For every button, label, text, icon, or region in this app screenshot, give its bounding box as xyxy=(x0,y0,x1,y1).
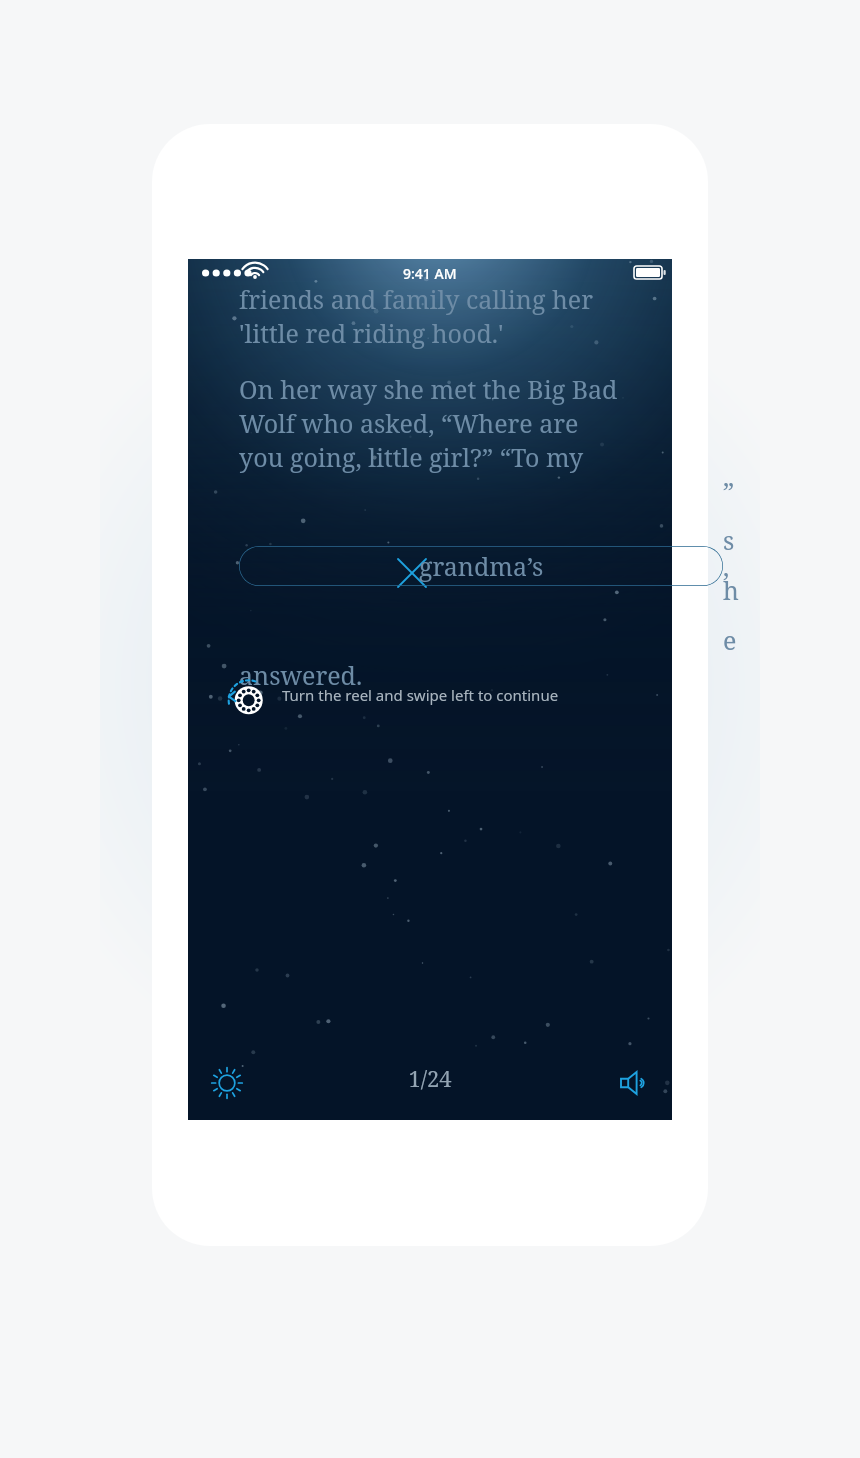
staticText: On her way she met the Big Bad xyxy=(239,372,618,406)
staticText: 1/24 xyxy=(408,1063,452,1093)
button[interactable]: Close xyxy=(391,552,433,594)
staticText: Wolf who asked, “Where are xyxy=(239,406,579,440)
staticText: you going, little girl?” “To my xyxy=(239,440,584,474)
staticText: 9:41 AM xyxy=(403,264,457,283)
button[interactable]: grandma’s xyxy=(239,546,723,586)
button[interactable]: Brightness xyxy=(202,1058,252,1108)
staticText: grandma’s xyxy=(419,549,544,583)
staticText: answered. xyxy=(239,658,363,692)
staticText: Turn the reel and swipe left to continue xyxy=(282,685,559,705)
staticText: friends and family calling her xyxy=(239,282,593,316)
button[interactable]: Turn the reel and swipe left to continue xyxy=(228,673,559,717)
button[interactable]: Sound xyxy=(608,1058,658,1108)
staticText: 'little red riding hood.' xyxy=(239,316,504,350)
